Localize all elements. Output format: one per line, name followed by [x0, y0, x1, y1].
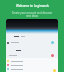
staticText: Welcome to Loginwork [16, 4, 49, 8]
staticText: Create your account and discover new ide… [9, 11, 55, 17]
